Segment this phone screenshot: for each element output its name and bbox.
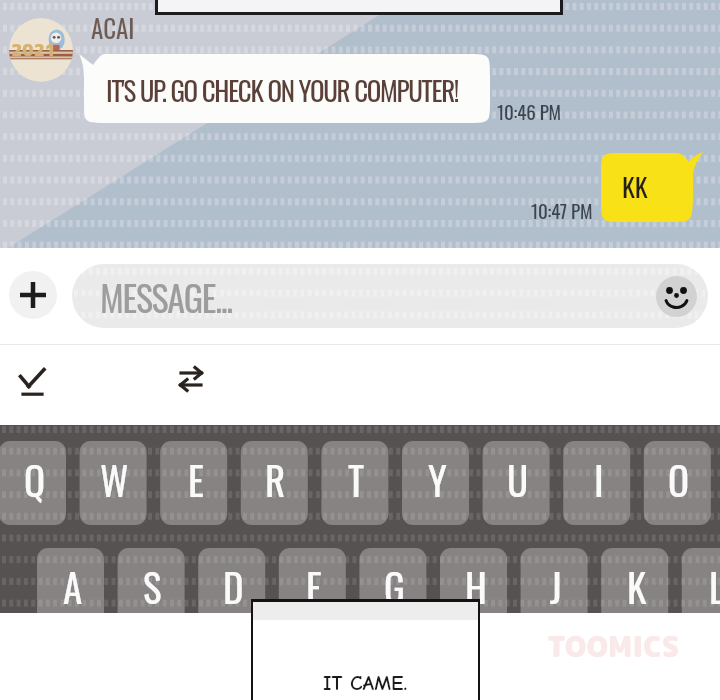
button[interactable]: O [645,437,712,521]
staticText: IT CAME. [323,671,408,695]
button[interactable]: MESSAGE... [72,264,708,328]
button[interactable]: Y [404,437,471,521]
staticText: D [223,557,244,613]
button[interactable]: Add attachment [9,271,57,319]
staticText: Y [428,450,447,508]
button[interactable]: Swap [172,358,220,406]
button[interactable]: K [603,544,670,613]
staticText: O [668,450,690,508]
staticText: G [384,557,405,613]
button[interactable]: Profile photo [9,18,73,82]
button[interactable]: W [81,437,148,521]
staticText: T [348,450,365,508]
staticText: TOOMICS [547,627,680,666]
staticText: 2021 [11,38,56,62]
button[interactable]: F [280,544,347,613]
staticText: S [143,557,162,613]
staticText: I [594,450,604,508]
button[interactable]: S [119,544,186,613]
button[interactable]: H [442,544,509,613]
staticText: R [265,450,286,508]
button[interactable]: U [484,437,551,521]
staticText: L [709,557,720,613]
staticText: ACAI [91,9,135,46]
staticText: E [188,450,204,508]
staticText: U [507,450,529,508]
staticText: KK [622,167,648,206]
button[interactable]: I [565,437,632,521]
staticText: H [465,557,487,613]
staticText: A [63,557,83,613]
button[interactable]: L [683,544,720,613]
staticText: 10:47 PM [531,196,593,224]
button[interactable]: J [522,544,589,613]
staticText: W [100,450,129,508]
button[interactable]: Hide keyboard [6,358,58,410]
button[interactable]: D [200,544,267,613]
button[interactable]: G [361,544,428,613]
staticText: Q [24,450,46,508]
button[interactable]: Q [1,437,68,521]
staticText: J [550,557,562,613]
button[interactable]: E [162,437,229,521]
staticText: K [627,557,647,613]
button[interactable]: T [323,437,390,521]
staticText: 10:46 PM [497,97,561,125]
staticText: MESSAGE... [100,270,232,323]
button[interactable]: Emoji [656,276,697,317]
staticText: IT'S UP. GO CHECK ON YOUR COMPUTER! [106,70,459,110]
button[interactable]: A [39,544,106,613]
button[interactable]: R [242,437,309,521]
staticText: F [306,557,322,613]
